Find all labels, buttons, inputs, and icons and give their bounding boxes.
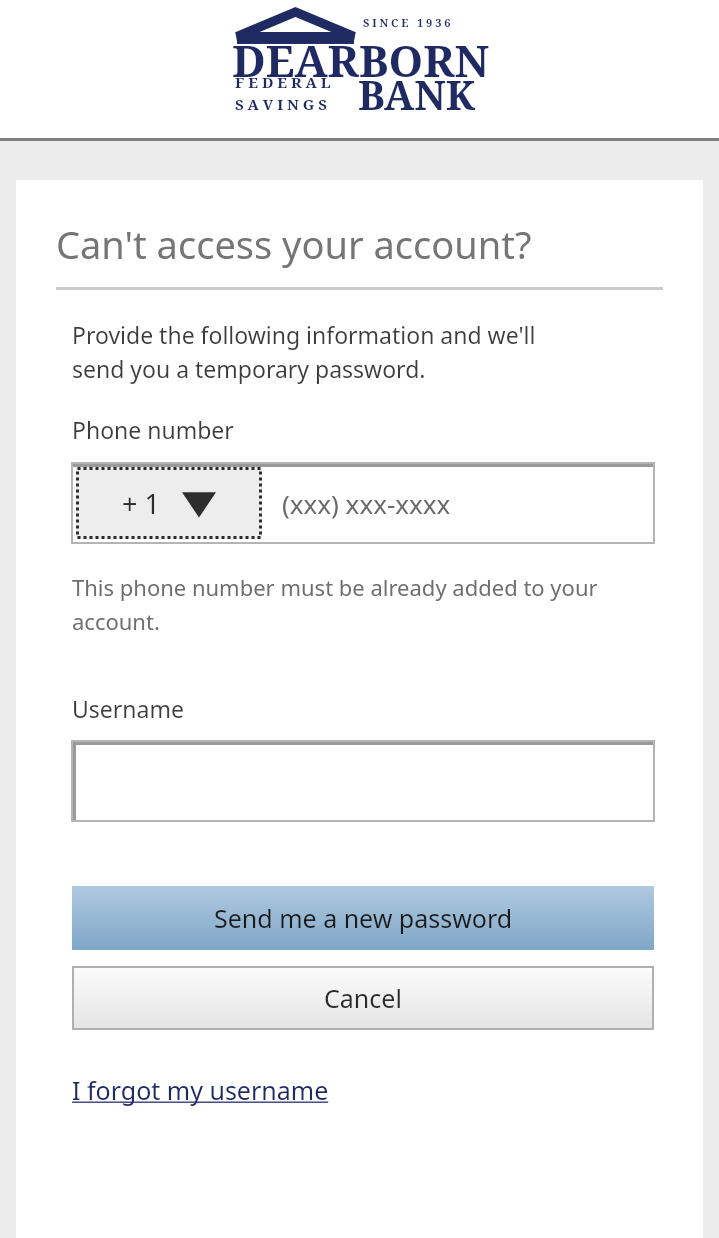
staticText: (xxx) xxx-xxxx bbox=[282, 486, 451, 521]
staticText: This phone number must be already added … bbox=[72, 572, 598, 637]
button[interactable]: I forgot my username bbox=[72, 1073, 329, 1107]
staticText: Username bbox=[72, 693, 184, 724]
staticText: I forgot my username bbox=[72, 1073, 329, 1107]
staticText: S A V I N G S bbox=[235, 94, 327, 114]
staticText: + 1 bbox=[122, 485, 160, 522]
staticText: F E D E R A L bbox=[235, 72, 331, 92]
button[interactable]: Send me a new password bbox=[72, 886, 654, 950]
staticText: Provide the following information and we… bbox=[72, 319, 536, 385]
staticText: Cancel bbox=[324, 981, 402, 1015]
staticText: Send me a new password bbox=[214, 901, 513, 935]
staticText: BANK bbox=[358, 67, 476, 121]
button[interactable]: Select country code bbox=[76, 467, 262, 539]
button[interactable]: Cancel bbox=[72, 966, 654, 1030]
button[interactable] bbox=[72, 741, 654, 821]
staticText: Can't access your account? bbox=[56, 218, 532, 270]
staticText: S I N C E 1 9 3 6 bbox=[363, 15, 451, 30]
staticText: DEARBORN bbox=[232, 30, 490, 90]
staticText: Phone number bbox=[72, 414, 234, 445]
